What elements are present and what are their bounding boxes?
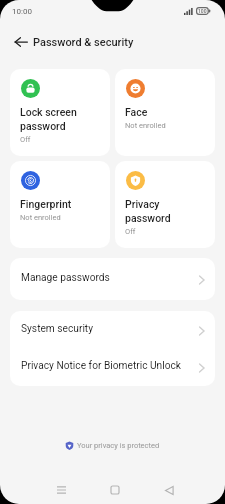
staticText: Manage passwords: [21, 272, 197, 284]
staticText: Your privacy is protected: [77, 441, 160, 450]
staticText: 100: [198, 8, 207, 14]
button[interactable]: Face: [115, 69, 215, 156]
button[interactable]: Home: [93, 481, 137, 499]
button[interactable]: Fingerprint: [10, 161, 110, 248]
staticText: Not enrolled: [20, 213, 61, 222]
staticText: System security: [21, 323, 197, 335]
staticText: Lock screen password: [20, 106, 77, 132]
button[interactable]: Back: [10, 31, 32, 53]
staticText: Privacy password: [125, 198, 171, 224]
staticText: Privacy Notice for Biometric Unlock: [21, 360, 197, 372]
staticText: Off: [20, 135, 31, 144]
button[interactable]: Privacy Notice for Biometric Unlock: [10, 348, 215, 386]
staticText: Fingerprint: [20, 198, 72, 210]
button[interactable]: Manage passwords: [10, 258, 215, 300]
staticText: Face: [125, 106, 148, 118]
staticText: 10:00: [12, 7, 32, 16]
staticText: Password & security: [33, 36, 134, 49]
button[interactable]: Recents: [39, 481, 83, 499]
staticText: Not enrolled: [125, 121, 166, 130]
button[interactable]: Back: [147, 481, 191, 499]
button[interactable]: Privacy password: [115, 161, 215, 248]
staticText: Off: [125, 227, 136, 236]
button[interactable]: System security: [10, 311, 215, 348]
button[interactable]: Lock screen password: [10, 69, 110, 156]
